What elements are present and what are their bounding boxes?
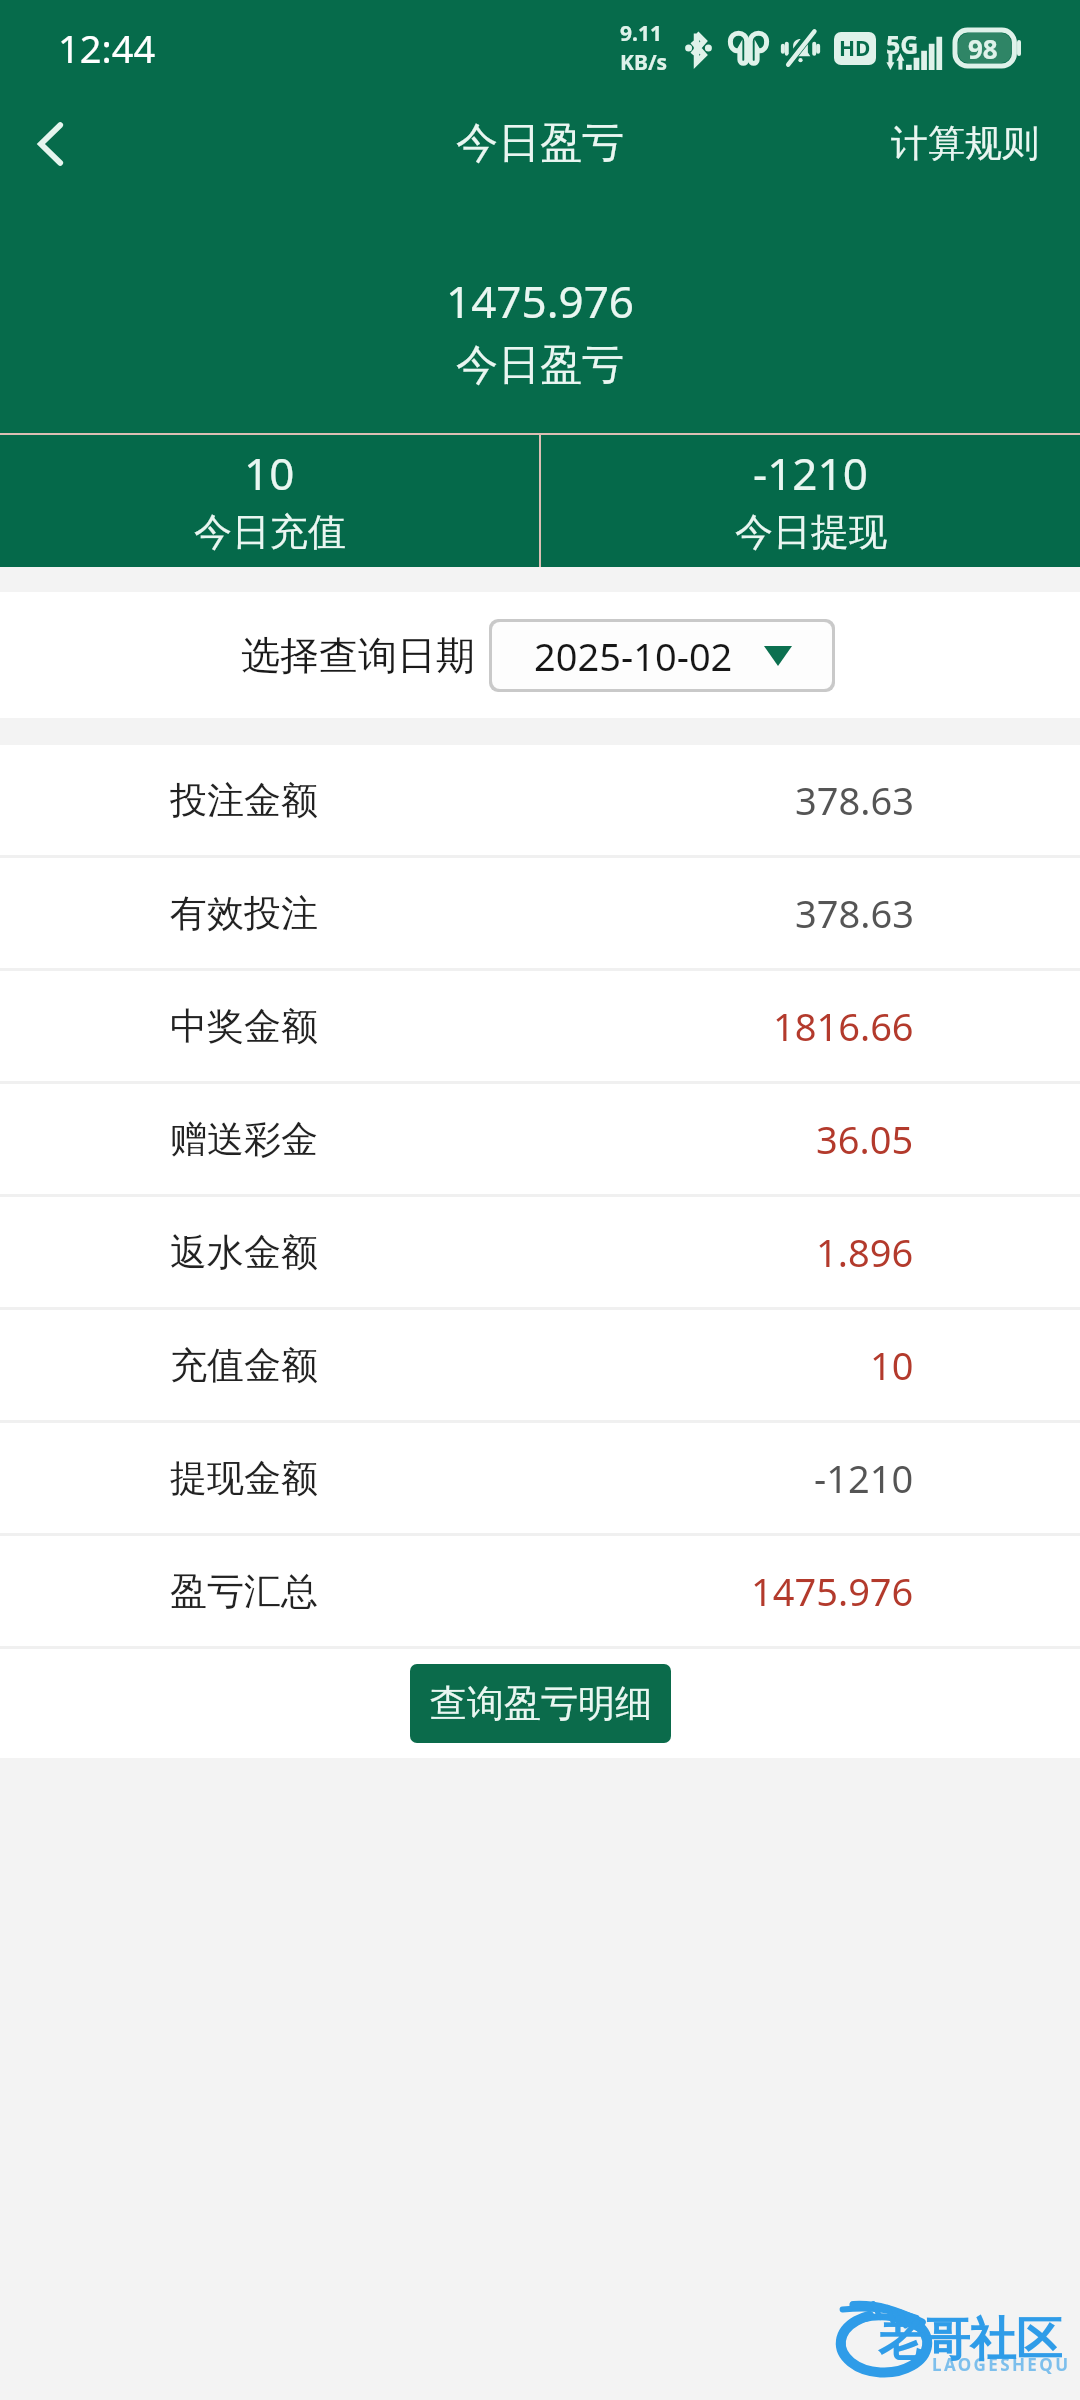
staticText: 10 — [244, 443, 295, 503]
staticText: 今日提现 — [735, 508, 887, 556]
staticText: 2025-10-02 — [534, 630, 733, 682]
button[interactable]: 提现金额 — [0, 1423, 1080, 1533]
staticText: 充值金额 — [170, 1342, 318, 1389]
staticText: 36.05 — [816, 1113, 914, 1165]
staticText: 选择查询日期 — [241, 631, 475, 680]
staticText: 有效投注 — [170, 890, 318, 937]
staticText: 赠送彩金 — [170, 1116, 318, 1163]
button[interactable]: Back — [0, 95, 101, 192]
staticText: 1475.976 — [751, 1565, 914, 1617]
staticText: 盈亏汇总 — [170, 1568, 318, 1615]
staticText: 1475.976 — [446, 271, 634, 331]
staticText: HD — [839, 34, 871, 63]
staticText: 返水金额 — [170, 1229, 318, 1276]
staticText: LAOGESHEQU — [932, 2353, 1071, 2376]
staticText: 中奖金额 — [170, 1003, 318, 1050]
staticText: 今日盈亏 — [456, 339, 624, 392]
button[interactable]: 投注金额 — [0, 745, 1080, 855]
staticText: 1816.66 — [773, 1000, 914, 1052]
staticText: 老哥社区 — [878, 2311, 1062, 2369]
staticText: 计算规则 — [891, 120, 1039, 167]
staticText: 10 — [870, 1339, 914, 1391]
staticText: 今日充值 — [194, 508, 346, 556]
staticText: 9.11 — [620, 19, 662, 48]
staticText: -1210 — [814, 1452, 914, 1504]
staticText: 1.896 — [816, 1226, 914, 1278]
button[interactable]: 返水金额 — [0, 1197, 1080, 1307]
button[interactable]: 赠送彩金 — [0, 1084, 1080, 1194]
button[interactable]: 充值金额 — [0, 1310, 1080, 1420]
button[interactable]: 中奖金额 — [0, 971, 1080, 1081]
button[interactable]: -1210 — [541, 435, 1080, 567]
staticText: 投注金额 — [170, 777, 318, 824]
staticText: 5G — [886, 27, 919, 61]
staticText: -1210 — [753, 443, 868, 503]
staticText: 今日盈亏 — [456, 117, 624, 170]
staticText: 查询盈亏明细 — [430, 1680, 652, 1727]
button[interactable]: 10 — [0, 435, 539, 567]
button[interactable]: 查询盈亏明细 — [410, 1664, 671, 1743]
button[interactable]: 盈亏汇总 — [0, 1536, 1080, 1646]
button[interactable]: 计算规则 — [891, 95, 1080, 192]
staticText: KB/s — [620, 48, 668, 77]
staticText: 378.63 — [795, 774, 914, 826]
button[interactable]: 2025-10-02 — [492, 622, 832, 689]
staticText: 12:44 — [58, 22, 156, 74]
button[interactable]: 有效投注 — [0, 858, 1080, 968]
staticText: 提现金额 — [170, 1455, 318, 1502]
staticText: 98 — [968, 31, 998, 66]
staticText: 378.63 — [795, 887, 914, 939]
